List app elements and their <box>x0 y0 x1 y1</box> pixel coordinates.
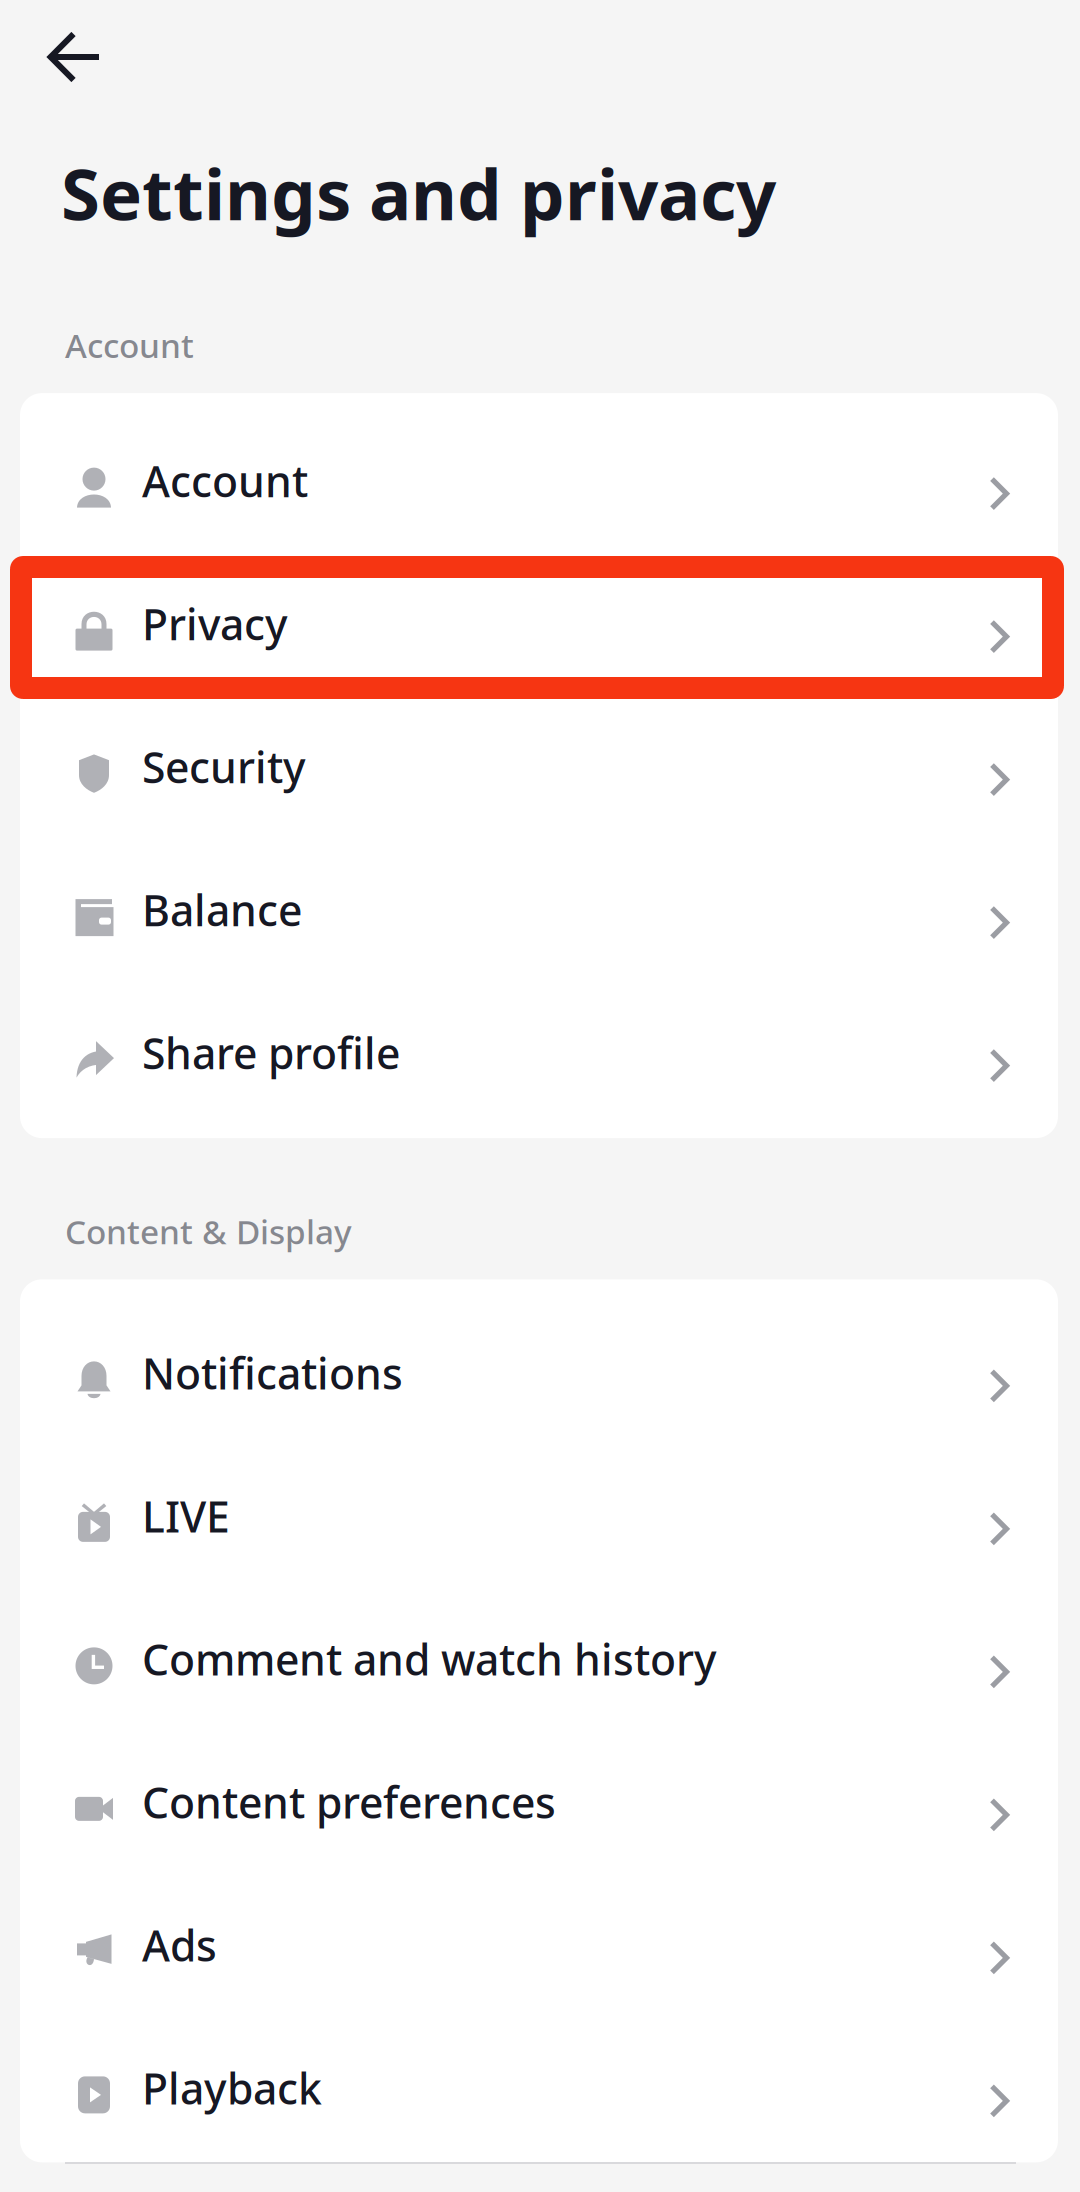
staticText: Comment and watch history <box>142 1630 717 1687</box>
button[interactable]: Balance <box>20 841 1058 984</box>
staticText: Account <box>65 323 194 367</box>
staticText: Settings and privacy <box>61 146 776 240</box>
staticText: Content & Display <box>65 1209 352 1253</box>
staticText: Content preferences <box>142 1773 556 1830</box>
staticText: Playback <box>142 2059 322 2116</box>
staticText: Security <box>142 738 306 795</box>
button[interactable]: Security <box>20 698 1058 841</box>
button[interactable]: Back <box>0 0 124 88</box>
staticText: Account <box>142 452 308 509</box>
button[interactable]: Account <box>20 412 1058 555</box>
staticText: Balance <box>142 881 302 938</box>
staticText: Privacy <box>142 595 288 652</box>
staticText: Notifications <box>142 1344 403 1401</box>
button[interactable]: Ads <box>20 1876 1058 2019</box>
staticText: Share profile <box>142 1024 400 1081</box>
button[interactable]: Comment and watch history <box>20 1590 1058 1733</box>
staticText: LIVE <box>142 1487 230 1544</box>
button[interactable]: LIVE <box>20 1447 1058 1590</box>
button[interactable]: Content preferences <box>20 1733 1058 1876</box>
staticText: Ads <box>142 1916 217 1973</box>
button[interactable]: Playback <box>20 2019 1058 2162</box>
button[interactable]: Privacy <box>20 555 1058 698</box>
button[interactable]: Notifications <box>20 1304 1058 1447</box>
button[interactable]: Share profile <box>20 984 1058 1127</box>
